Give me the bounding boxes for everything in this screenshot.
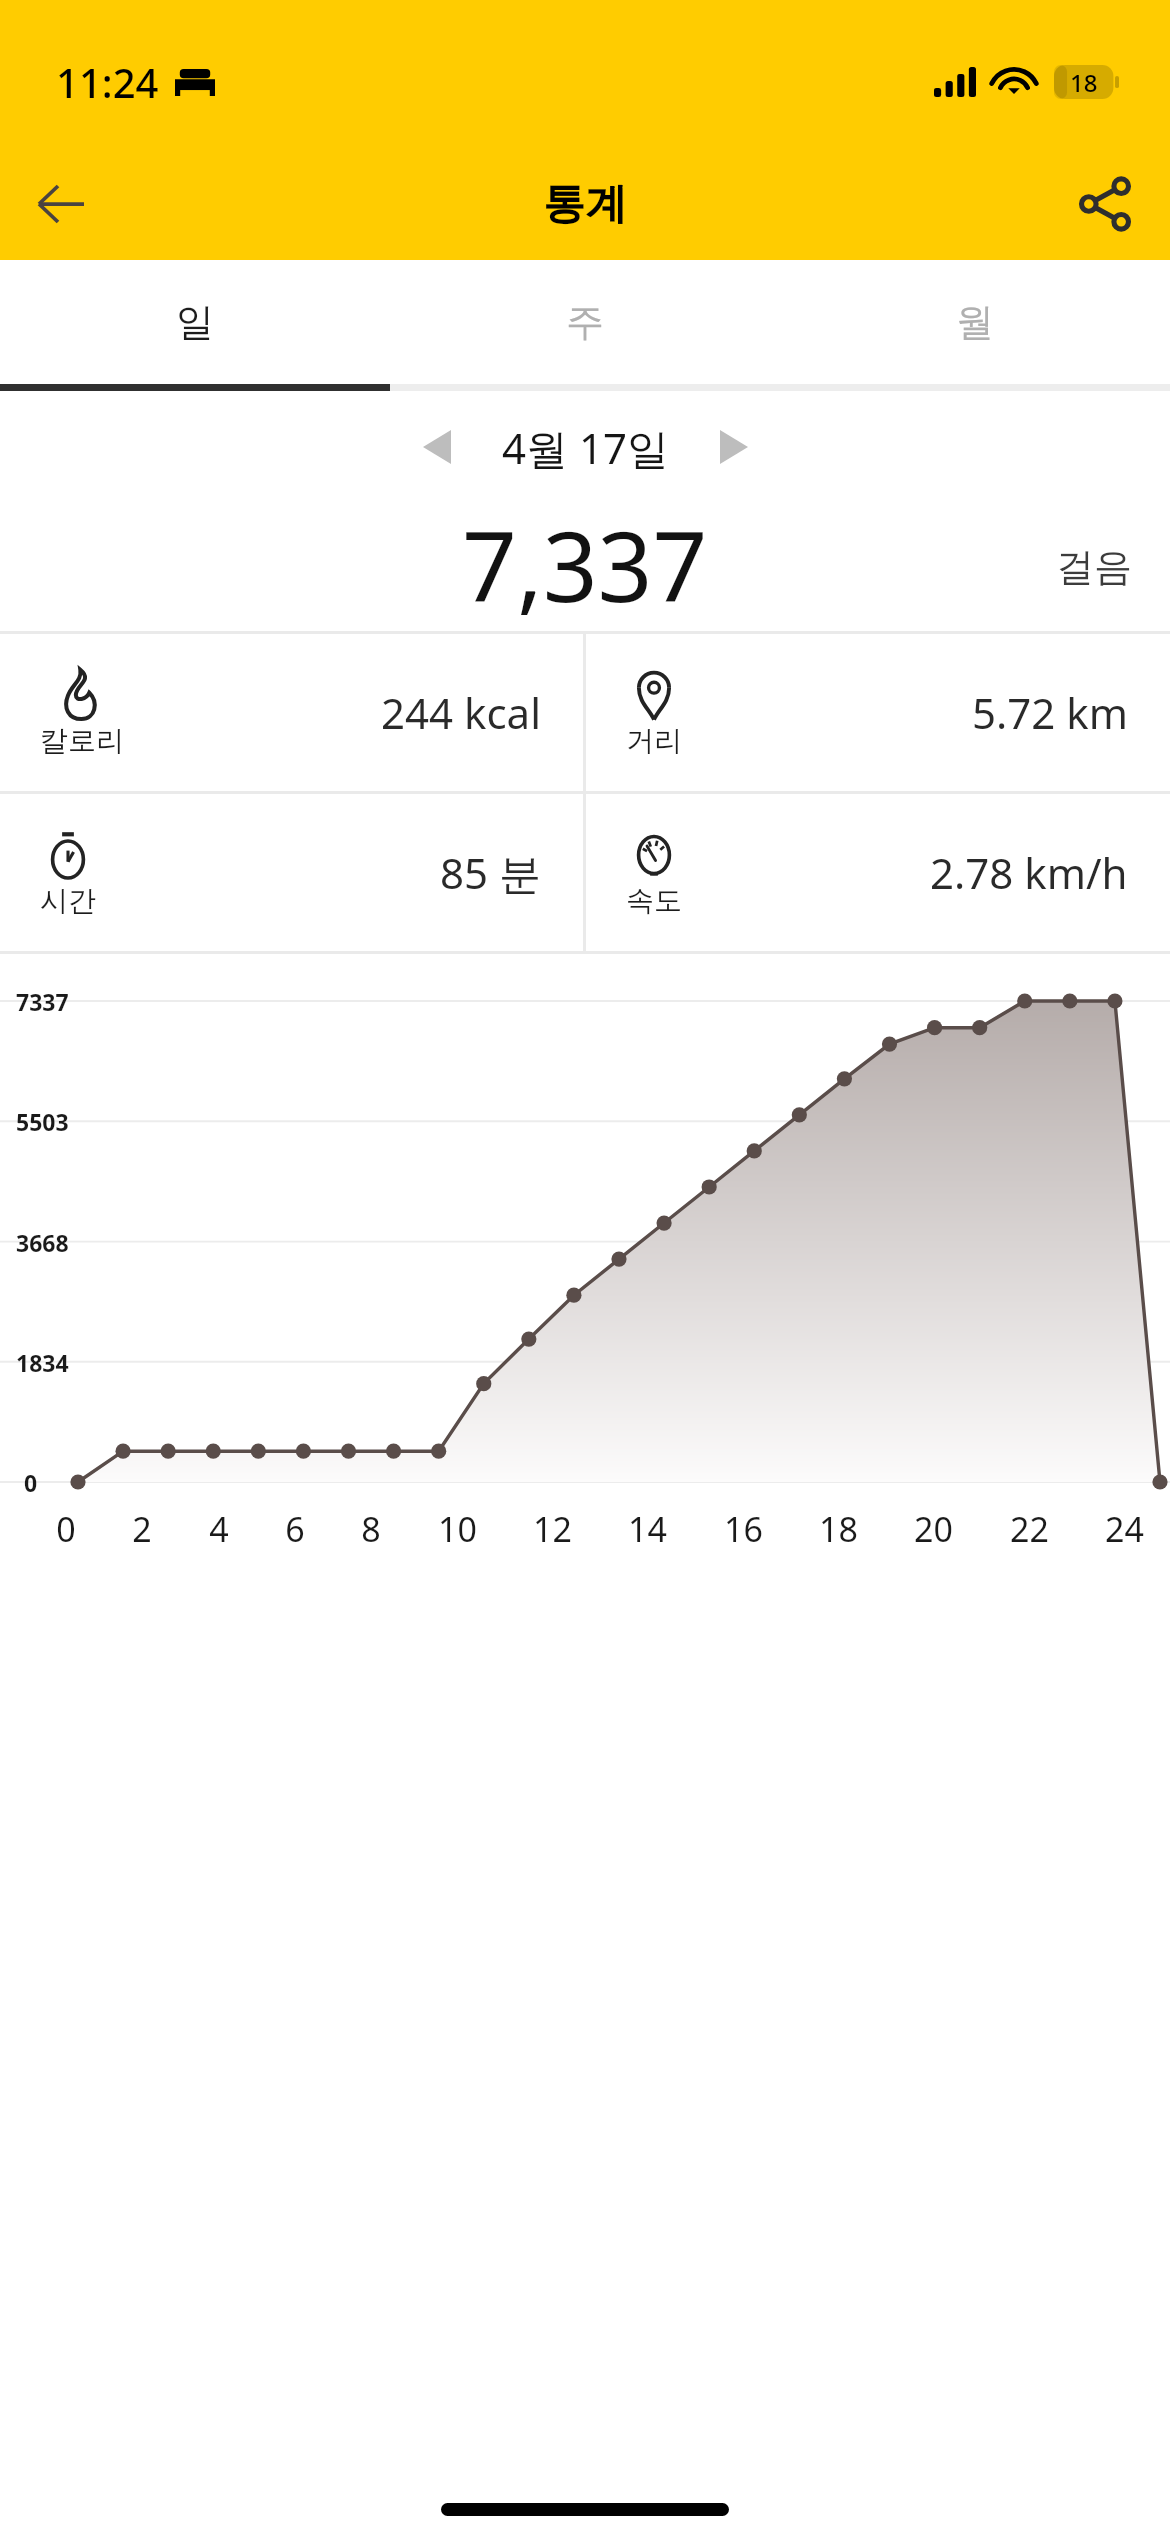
- staticText: 5503: [16, 1106, 69, 1137]
- staticText: 11:24: [56, 55, 159, 109]
- button[interactable]: 이전 날짜: [402, 412, 472, 482]
- staticText: 16: [724, 1506, 763, 1552]
- button[interactable]: 시간: [0, 794, 583, 951]
- button[interactable]: 일: [0, 260, 390, 384]
- staticText: 24: [1105, 1506, 1144, 1552]
- button[interactable]: 월: [780, 260, 1170, 384]
- staticText: 22: [1010, 1506, 1049, 1552]
- staticText: 4월 17일: [502, 419, 669, 476]
- button[interactable]: 다음 날짜: [699, 412, 769, 482]
- staticText: 10: [438, 1506, 477, 1552]
- staticText: 일: [176, 298, 214, 346]
- button[interactable]: 거리: [586, 634, 1170, 791]
- staticText: 시간: [40, 883, 96, 918]
- staticText: 18: [819, 1506, 858, 1552]
- staticText: 12: [533, 1506, 572, 1552]
- staticText: 통계: [543, 178, 627, 231]
- staticText: 거리: [626, 723, 682, 758]
- staticText: 20: [914, 1506, 953, 1552]
- staticText: 5.72 km: [972, 684, 1128, 741]
- staticText: 18: [1070, 66, 1098, 99]
- staticText: 0: [56, 1506, 76, 1552]
- staticText: 3668: [16, 1227, 69, 1258]
- staticText: 칼로리: [40, 723, 124, 758]
- staticText: 244 kcal: [381, 684, 541, 741]
- staticText: 14: [628, 1506, 667, 1552]
- button[interactable]: 속도: [586, 794, 1170, 951]
- staticText: 2: [132, 1506, 152, 1552]
- staticText: 4: [209, 1506, 229, 1552]
- staticText: 7337: [16, 986, 69, 1017]
- staticText: 8: [361, 1506, 381, 1552]
- button[interactable]: 공유: [1060, 159, 1150, 249]
- staticText: 7,337: [462, 499, 708, 627]
- staticText: 걸음: [1056, 543, 1132, 591]
- staticText: 85 분: [440, 844, 541, 901]
- button[interactable]: 뒤로: [16, 159, 106, 249]
- staticText: 0: [24, 1467, 38, 1498]
- staticText: 주: [566, 298, 604, 346]
- staticText: 1834: [16, 1347, 69, 1378]
- button[interactable]: 주: [390, 260, 780, 384]
- staticText: 6: [285, 1506, 305, 1552]
- button[interactable]: 칼로리: [0, 634, 583, 791]
- staticText: 2.78 km/h: [930, 844, 1128, 901]
- staticText: 월: [956, 298, 994, 346]
- staticText: 속도: [626, 883, 682, 918]
